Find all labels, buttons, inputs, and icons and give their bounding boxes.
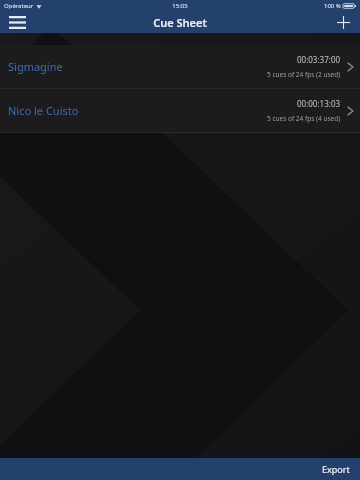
staticText: Cue Sheet [153, 15, 207, 30]
staticText: 5 cues of 24 fps (4 used) [267, 114, 341, 123]
staticText: 00:03:37:00 [297, 54, 341, 65]
button[interactable]: Sigmagine [0, 45, 360, 88]
staticText: 00:00:13:03 [297, 98, 341, 109]
button[interactable]: Add cue sheet [326, 12, 360, 33]
staticText: Export [322, 463, 350, 475]
staticText: 5 cues of 24 fps (2 used) [267, 70, 341, 79]
staticText: Nico le Cuisto [8, 103, 79, 118]
staticText: Sigmagine [8, 59, 63, 74]
button[interactable]: Menu [0, 12, 34, 33]
staticText: Opérateur [4, 2, 34, 10]
button[interactable]: Nico le Cuisto [0, 89, 360, 132]
staticText: 15:05 [172, 2, 188, 10]
button[interactable]: Export [312, 458, 360, 480]
staticText: 100 % [324, 2, 341, 10]
